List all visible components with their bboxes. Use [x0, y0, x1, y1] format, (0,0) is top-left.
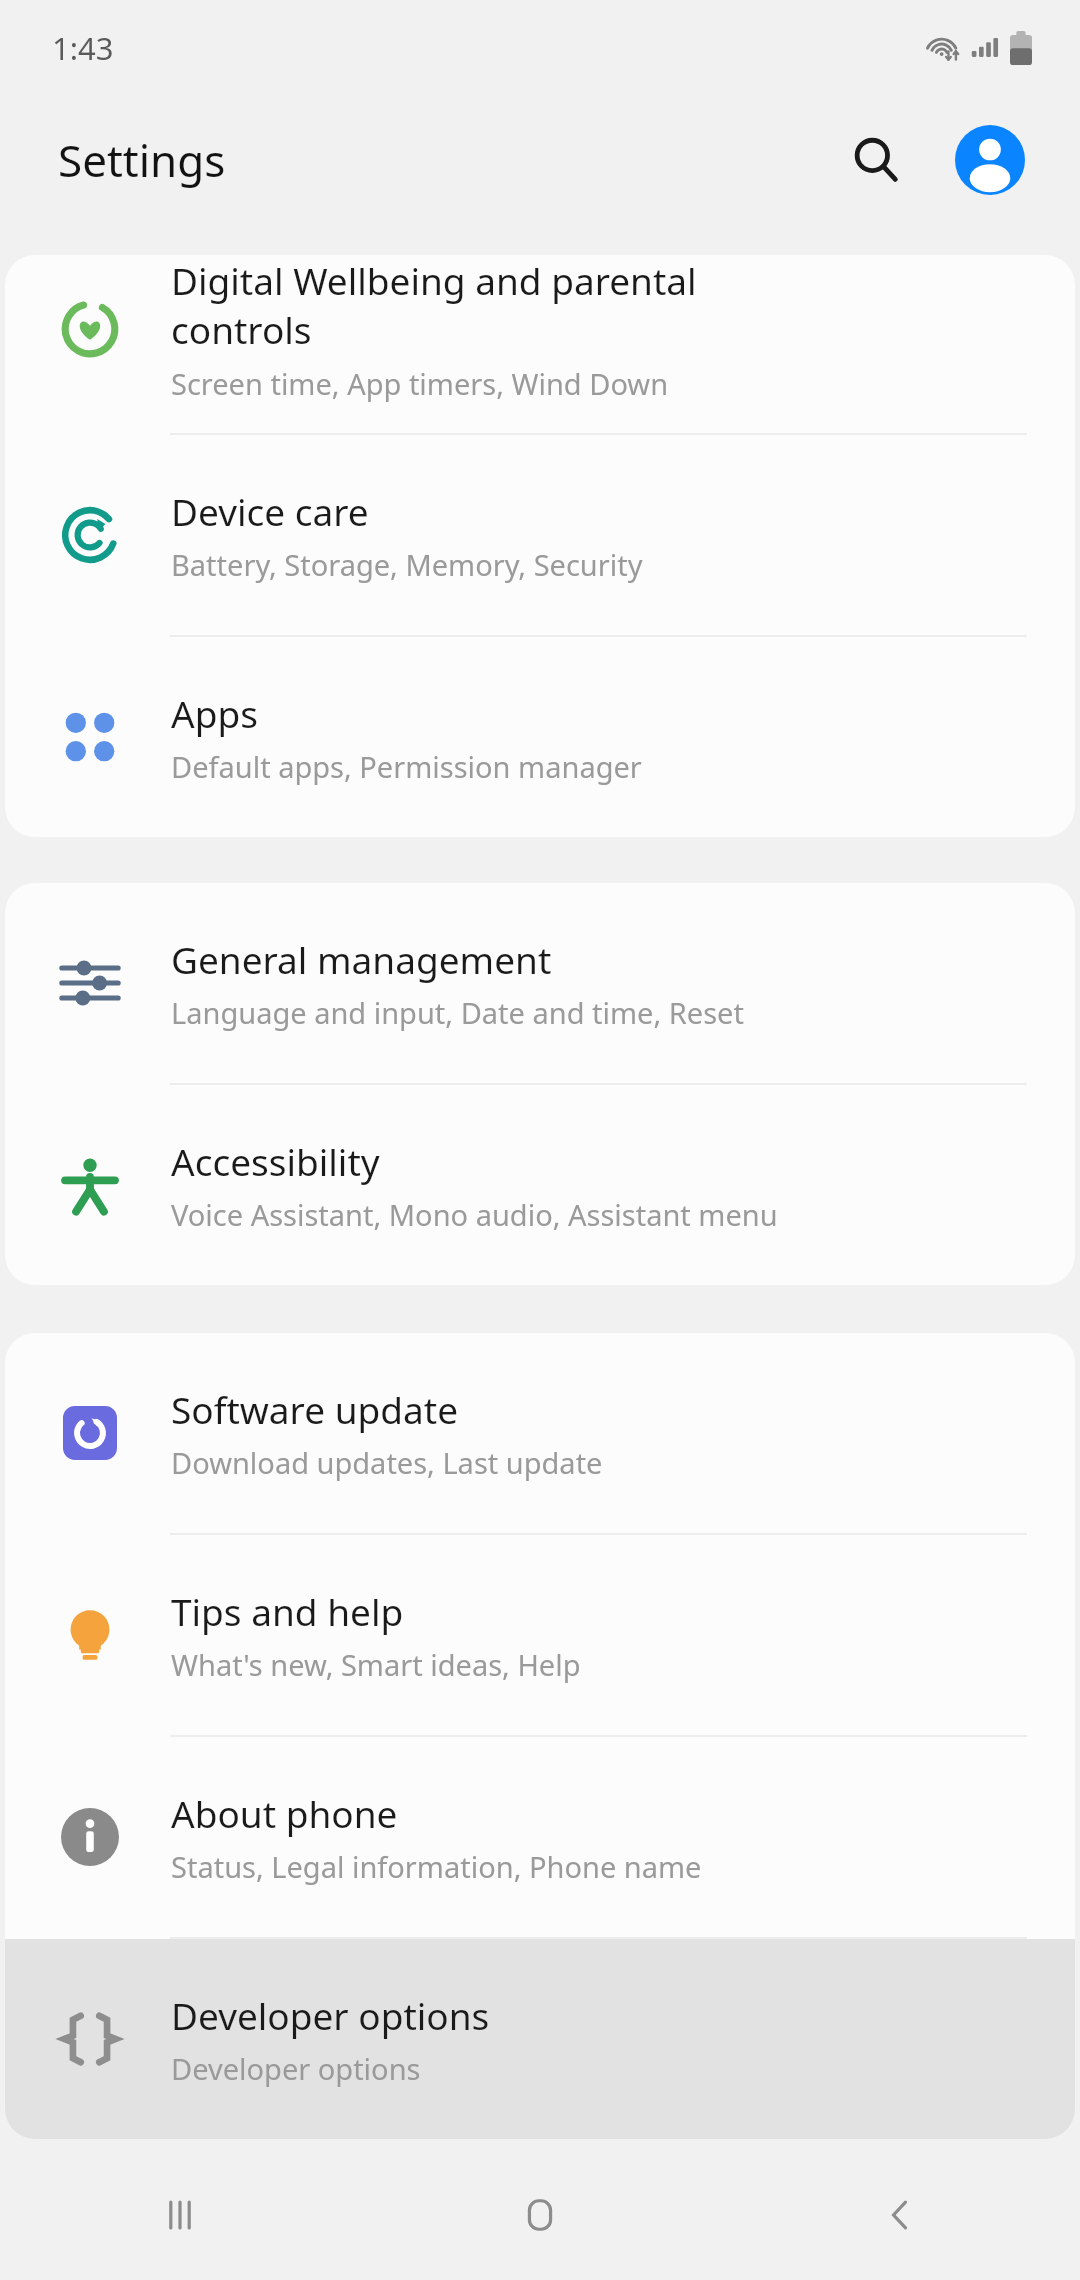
staticText: Settings: [58, 130, 226, 190]
button[interactable]: Recent apps: [0, 2150, 360, 2280]
button[interactable]: Home: [360, 2150, 720, 2280]
staticText: Battery, Storage, Memory, Security: [171, 545, 643, 584]
button[interactable]: Search: [828, 112, 924, 208]
staticText: Apps: [171, 688, 258, 738]
staticText: 1:43: [52, 27, 114, 69]
staticText: Download updates, Last update: [171, 1443, 603, 1482]
button[interactable]: Software update: [5, 1333, 1075, 1533]
button[interactable]: Apps: [5, 637, 1075, 837]
button[interactable]: Tips and help: [5, 1535, 1075, 1735]
button[interactable]: General management: [5, 883, 1075, 1083]
staticText: Developer options: [171, 1990, 490, 2040]
staticText: Digital Wellbeing and parental controls: [171, 255, 697, 355]
staticText: What's new, Smart ideas, Help: [171, 1645, 581, 1684]
staticText: Status, Legal information, Phone name: [171, 1847, 702, 1886]
button[interactable]: Developer options: [5, 1939, 1075, 2139]
button[interactable]: Accessibility: [5, 1085, 1075, 1285]
staticText: Default apps, Permission manager: [171, 747, 642, 786]
staticText: General management: [171, 934, 552, 984]
staticText: Developer options: [171, 2049, 421, 2088]
staticText: Accessibility: [171, 1136, 380, 1186]
staticText: Software update: [171, 1384, 459, 1434]
staticText: Language and input, Date and time, Reset: [171, 993, 744, 1032]
button[interactable]: Back: [720, 2150, 1080, 2280]
button[interactable]: Device care: [5, 435, 1075, 635]
button[interactable]: Digital Wellbeing and parental controls: [5, 255, 1075, 433]
staticText: Tips and help: [171, 1586, 404, 1636]
staticText: About phone: [171, 1788, 398, 1838]
staticText: Voice Assistant, Mono audio, Assistant m…: [171, 1195, 778, 1234]
button[interactable]: Account: [942, 112, 1038, 208]
staticText: Device care: [171, 486, 369, 536]
staticText: Screen time, App timers, Wind Down: [171, 364, 669, 403]
button[interactable]: About phone: [5, 1737, 1075, 1937]
